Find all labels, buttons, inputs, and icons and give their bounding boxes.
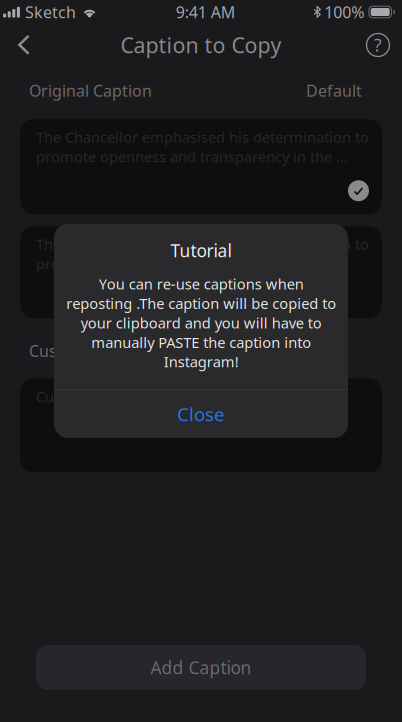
staticText: Caption to Copy bbox=[120, 31, 281, 59]
button[interactable]: Add Caption bbox=[36, 645, 366, 690]
staticText: Close bbox=[177, 402, 225, 426]
staticText: Tutorial bbox=[170, 239, 231, 262]
button[interactable]: The Chancellor emphasised his determinat… bbox=[20, 226, 382, 318]
staticText: 9:41 AM bbox=[176, 1, 236, 23]
staticText: Custom caption bbox=[36, 386, 144, 406]
staticText: ? bbox=[374, 33, 382, 56]
button[interactable]: Custom caption bbox=[20, 378, 382, 472]
button[interactable]: Help bbox=[357, 24, 399, 66]
button[interactable]: Close bbox=[54, 390, 348, 438]
staticText: Sketch bbox=[25, 1, 76, 23]
button[interactable]: The Chancellor emphasised his determinat… bbox=[20, 119, 382, 214]
staticText: Default bbox=[306, 80, 362, 101]
staticText: 100% bbox=[324, 1, 364, 23]
staticText: Add Caption bbox=[150, 656, 251, 679]
button[interactable]: Back bbox=[3, 24, 45, 66]
staticText: Original Caption bbox=[29, 80, 152, 101]
staticText: You can re-use captions when reposting .… bbox=[66, 274, 336, 371]
staticText: The Chancellor emphasised his determinat… bbox=[36, 234, 369, 273]
staticText: Custom bbox=[29, 340, 88, 361]
staticText: The Chancellor emphasised his determinat… bbox=[36, 127, 369, 166]
